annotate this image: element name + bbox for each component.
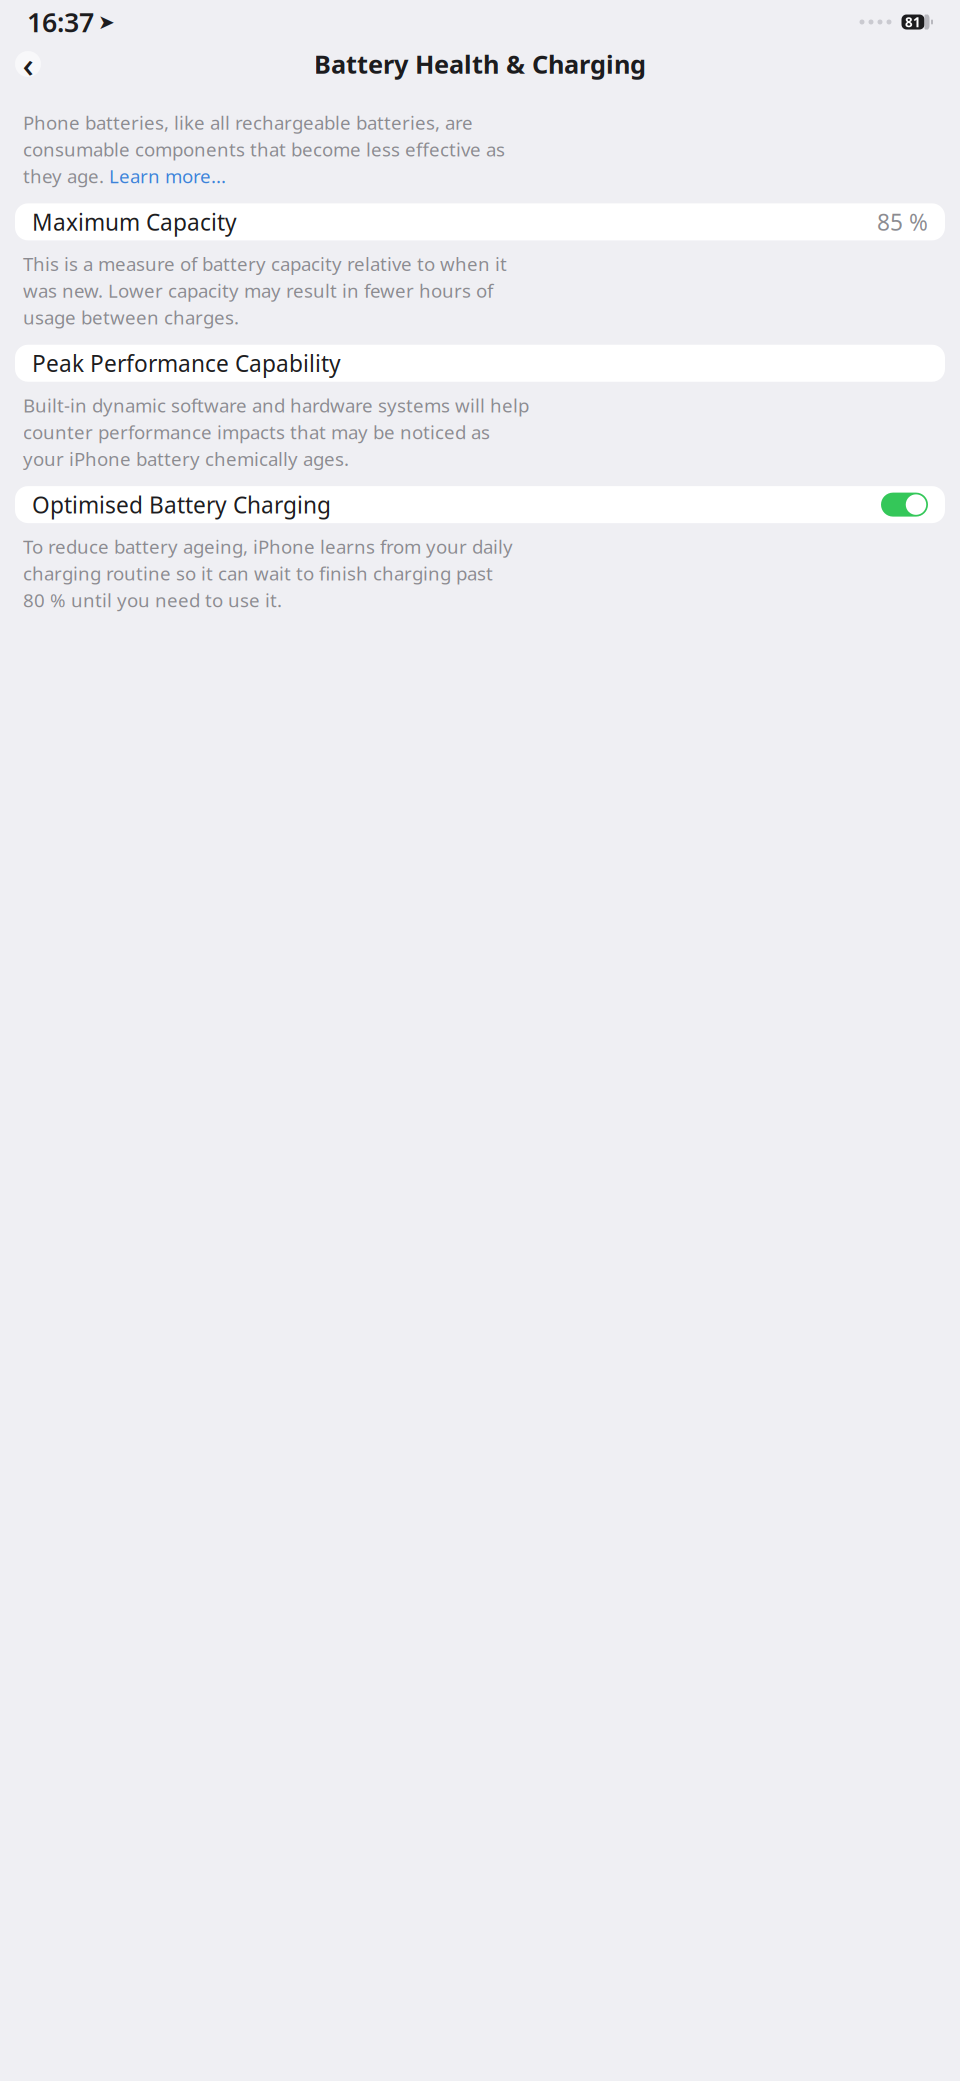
staticText: ➤ [98, 11, 115, 33]
staticText: This is a measure of battery capacity re… [23, 251, 507, 276]
staticText: usage between charges. [23, 305, 239, 330]
staticText: Built-in dynamic software and hardware s… [23, 393, 529, 417]
staticText: To reduce battery ageing, iPhone learns … [23, 534, 513, 559]
staticText: 16:37 [27, 4, 94, 40]
staticText: your iPhone battery chemically ages. [23, 446, 349, 471]
staticText: counter performance impacts that may be … [23, 419, 490, 444]
staticText: 80 % until you need to use it. [23, 588, 282, 612]
staticText: consumable components that become less e… [23, 137, 505, 162]
button[interactable]: Back [11, 47, 45, 81]
staticText: Learn more... [109, 164, 226, 188]
button[interactable]: Learn more... [109, 164, 226, 188]
button[interactable]: Maximum Capacity [15, 203, 945, 240]
staticText: Phone batteries, like all rechargeable b… [23, 110, 473, 135]
button[interactable]: Peak Performance Capability [15, 345, 945, 382]
staticText: was new. Lower capacity may result in fe… [23, 278, 493, 303]
staticText: they age. [23, 164, 109, 188]
staticText: ‹ [22, 41, 33, 87]
staticText: charging routine so it can wait to finis… [23, 561, 493, 586]
staticText: Battery Health & Charging [314, 47, 646, 81]
button[interactable]: Optimised Battery Charging [15, 486, 945, 523]
staticText: 81 [905, 13, 921, 31]
staticText: Optimised Battery Charging [32, 490, 331, 520]
staticText: Peak Performance Capability [32, 348, 341, 378]
staticText: Maximum Capacity [32, 207, 237, 237]
staticText: 85 % [877, 207, 928, 237]
